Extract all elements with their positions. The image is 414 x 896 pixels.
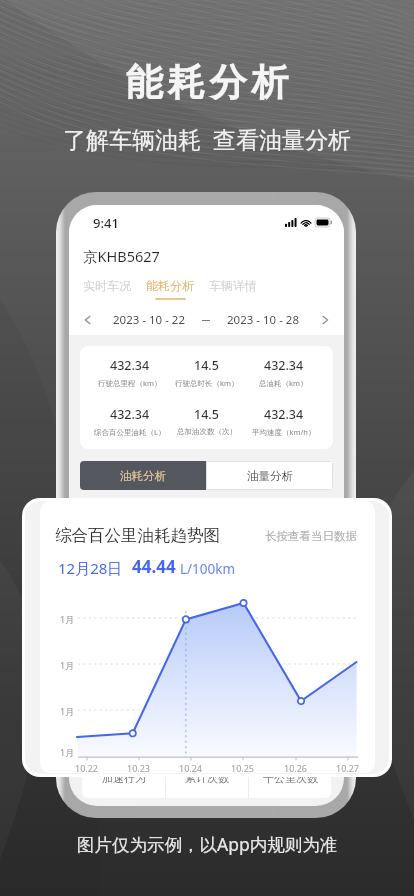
staticText: 10.23 <box>127 762 151 773</box>
staticText: 432.34 <box>264 406 304 423</box>
staticText: 432.34 <box>264 357 304 374</box>
staticText: 2023 - 10 - 28 <box>227 312 299 328</box>
staticText: 油耗分析 <box>120 469 166 483</box>
staticText: 千公里次数 <box>263 771 318 785</box>
staticText: 车辆详情 <box>209 278 257 293</box>
button[interactable]: 油耗分析 <box>80 461 206 490</box>
button[interactable]: Previous week <box>80 312 96 328</box>
staticText: 14.5 <box>194 357 219 374</box>
button[interactable]: 能耗分析 <box>145 278 195 300</box>
button[interactable]: Next week <box>317 312 333 328</box>
staticText: 油量分析 <box>247 469 293 483</box>
staticText: 综合百公里油耗（L） <box>94 427 166 437</box>
staticText: 10.25 <box>231 762 255 773</box>
staticText: 能耗分析 <box>123 59 291 106</box>
staticText: 14.5 <box>194 406 219 423</box>
staticText: 1月 <box>60 746 75 758</box>
staticText: 了解车辆油耗 查看油量分析 <box>63 123 351 154</box>
staticText: 10.26 <box>284 762 308 773</box>
staticText: 行驶总里程（km） <box>98 378 162 388</box>
button[interactable]: 油量分析 <box>206 461 333 490</box>
staticText: L/100km <box>180 560 236 578</box>
staticText: 10.27 <box>336 762 360 773</box>
staticText: 累计次数 <box>185 771 229 785</box>
staticText: 图片仅为示例，以App内规则为准 <box>77 832 338 856</box>
staticText: 加速行为 <box>102 771 146 785</box>
button[interactable]: 车辆详情 <box>208 278 258 298</box>
staticText: 实时车况 <box>83 278 131 293</box>
staticText: 1月 <box>60 705 75 717</box>
staticText: 2023 - 10 - 22 <box>113 312 185 328</box>
staticText: 能耗分析 <box>146 278 194 293</box>
staticText: 行驶总时长（km） <box>175 378 239 388</box>
staticText: 总油耗（km） <box>259 378 308 388</box>
staticText: 44.44 <box>132 555 176 578</box>
staticText: 京KHB5627 <box>83 246 160 266</box>
staticText: 9:41 <box>93 214 119 232</box>
staticText: 平均速度（km/h） <box>252 427 316 437</box>
staticText: 10.22 <box>75 762 99 773</box>
staticText: 综合百公里油耗趋势图 <box>55 525 220 546</box>
staticText: 12月28日 <box>58 558 123 578</box>
button[interactable]: 实时车况 <box>82 278 132 298</box>
staticText: 1月 <box>60 659 75 671</box>
staticText: 1月 <box>60 613 75 625</box>
staticText: 10.24 <box>179 762 203 773</box>
staticText: 432.34 <box>110 357 150 374</box>
staticText: 长按查看当日数据 <box>265 529 357 543</box>
staticText: 总加油次数（次） <box>177 427 237 436</box>
staticText: 432.34 <box>110 406 150 423</box>
